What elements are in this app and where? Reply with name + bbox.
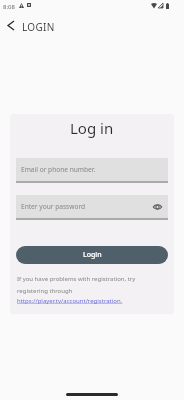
button[interactable]: Enter your password	[16, 195, 168, 219]
staticText: Enter your password	[21, 202, 86, 211]
staticText: LOGIN	[22, 20, 55, 34]
button[interactable]: Toggle password visibility	[151, 201, 163, 213]
button[interactable]: Login	[16, 246, 168, 264]
staticText: Login	[83, 250, 102, 260]
staticText: Email or phone number.	[21, 165, 96, 174]
button[interactable]: Back	[1, 16, 21, 34]
button[interactable]: Email or phone number.	[16, 158, 168, 182]
staticText: 8:08	[3, 3, 15, 11]
staticText: registering through	[17, 287, 73, 295]
button[interactable]: https://player.tv/account/registration.	[17, 297, 123, 305]
staticText: If you have problems with registration, …	[17, 275, 136, 283]
staticText: Log in	[70, 118, 114, 138]
